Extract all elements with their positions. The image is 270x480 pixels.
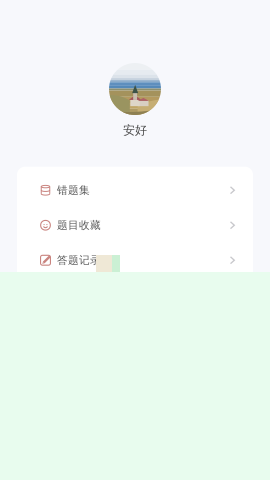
button[interactable]: 错题集 [17,173,253,208]
button[interactable]: 题目收藏 [17,208,253,243]
staticText: 答题记录 [57,254,101,267]
staticText: 安好 [123,123,147,138]
button[interactable]: 答题记录 [17,243,253,278]
staticText: 错题集 [57,184,90,197]
staticText: 题目收藏 [57,219,101,232]
